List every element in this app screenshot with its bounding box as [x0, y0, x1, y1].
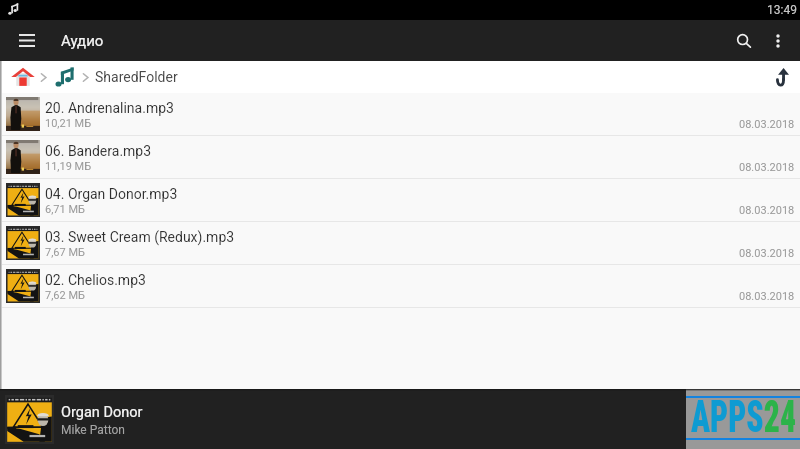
staticText: APPS [691, 390, 764, 443]
button[interactable]: 06. Bandera.mp3 [0, 136, 800, 178]
staticText: 08.03.2018 [739, 204, 795, 217]
staticText: 6,71 МБ [45, 203, 85, 216]
staticText: 13:49 [767, 3, 797, 17]
button[interactable]: 02. Chelios.mp3 [0, 265, 800, 307]
staticText: Organ Donor [61, 404, 143, 421]
staticText: 7,67 МБ [45, 246, 85, 259]
staticText: Mike Patton [61, 423, 125, 437]
staticText: 7,62 МБ [45, 289, 85, 302]
staticText: 20. Andrenalina.mp3 [45, 100, 174, 116]
button[interactable]: Home [11, 65, 35, 89]
button[interactable]: Go up [766, 61, 798, 93]
button[interactable]: Navigation menu [0, 20, 54, 61]
staticText: 08.03.2018 [739, 290, 795, 303]
staticText: 24 [764, 390, 797, 443]
staticText: 08.03.2018 [739, 161, 795, 174]
button[interactable]: Organ Donor [0, 389, 800, 449]
staticText: 04. Organ Donor.mp3 [45, 186, 178, 202]
staticText: 06. Bandera.mp3 [45, 143, 152, 159]
button[interactable]: Music folder [55, 67, 75, 87]
button[interactable]: 20. Andrenalina.mp3 [0, 93, 800, 135]
button[interactable]: Search [727, 20, 761, 61]
staticText: 08.03.2018 [739, 118, 795, 131]
staticText: 11,19 МБ [45, 160, 92, 173]
button[interactable]: More options [761, 20, 794, 61]
staticText: Аудио [61, 32, 104, 50]
staticText: 10,21 МБ [45, 117, 92, 130]
staticText: 03. Sweet Cream (Redux).mp3 [45, 229, 235, 245]
button[interactable]: SharedFolder [95, 69, 178, 85]
staticText: 02. Chelios.mp3 [45, 272, 146, 288]
staticText: 08.03.2018 [739, 247, 795, 260]
button[interactable]: 03. Sweet Cream (Redux).mp3 [0, 222, 800, 264]
button[interactable]: 04. Organ Donor.mp3 [0, 179, 800, 221]
